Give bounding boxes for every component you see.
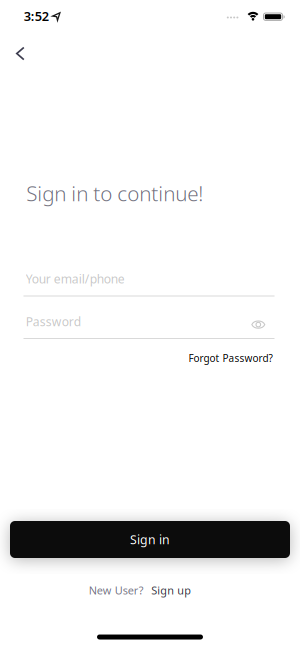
staticText: Sign up <box>151 583 191 598</box>
staticText: Sign in to continue! <box>26 179 203 207</box>
staticText: New User? <box>89 583 144 598</box>
staticText: Forgot Password? <box>188 351 272 365</box>
button[interactable]: Sign in <box>10 521 290 558</box>
staticText: Sign in <box>130 531 170 548</box>
staticText: Password <box>26 313 81 330</box>
button[interactable]: Sign up <box>151 583 191 598</box>
staticText: 3:52 <box>24 7 49 25</box>
button[interactable]: Show password <box>244 313 273 336</box>
staticText: Your email/phone <box>26 271 125 287</box>
button[interactable]: Back <box>0 33 40 73</box>
button[interactable]: Forgot Password? <box>188 351 272 365</box>
